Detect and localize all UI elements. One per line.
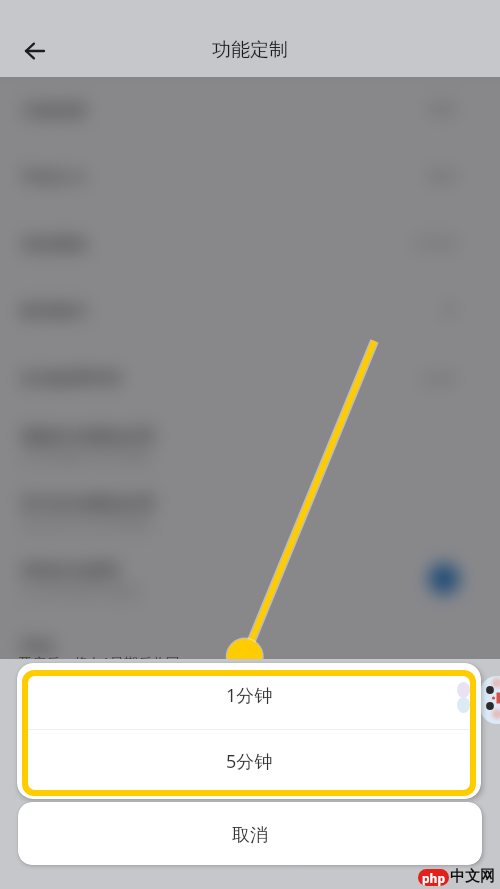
staticText: 5分钟 [226,749,273,774]
button[interactable]: Back [11,27,59,75]
staticText: 自动锁屏时间 [20,368,122,389]
staticText: 视频自动播放设置 [20,426,156,447]
staticText: 主题皮肤 [20,100,88,121]
staticText: 开启后，将在1星期后收回 [18,653,181,672]
staticText: 音乐自动播放设置 [20,493,156,514]
staticText: 1分钟 [226,683,273,708]
staticText: 来电自动接听 [20,560,122,581]
staticText: 功能定制 [212,38,288,62]
staticText: 字体大小 [20,167,88,188]
staticText: 中文网 [450,867,495,886]
staticText: 夜间模式 [20,301,88,322]
staticText: 消息通知 [20,234,88,255]
button[interactable]: 1分钟 [28,676,470,729]
staticText: 取消 [232,824,268,847]
staticText: 其他 [20,636,54,657]
button[interactable]: 取消 [18,802,482,865]
staticText: php [422,870,445,886]
button[interactable]: 5分钟 [28,730,470,790]
